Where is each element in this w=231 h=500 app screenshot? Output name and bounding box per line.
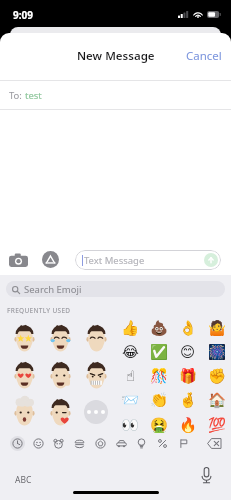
button[interactable]: Sticker: [43, 321, 77, 355]
button[interactable]: Cancel: [177, 42, 231, 70]
button[interactable]: Smileys: [28, 432, 48, 454]
button[interactable]: 💩: [147, 316, 171, 340]
button[interactable]: To:: [0, 81, 231, 109]
staticText: ✅: [150, 344, 169, 361]
button[interactable]: Sticker: [7, 395, 41, 429]
staticText: New Message: [77, 48, 155, 64]
button[interactable]: Objects: [131, 432, 151, 454]
staticText: 🤞: [179, 392, 198, 409]
staticText: 9:09: [13, 8, 33, 22]
button[interactable]: 📨: [118, 388, 142, 412]
button[interactable]: ☝️: [118, 364, 142, 388]
staticText: 🤷: [208, 320, 227, 337]
button[interactable]: 🏠: [205, 388, 229, 412]
button[interactable]: Dictation: [197, 464, 216, 486]
staticText: 👌: [179, 320, 198, 337]
button[interactable]: 💯: [205, 413, 229, 437]
staticText: 🤮: [150, 417, 169, 434]
staticText: 🏠: [208, 392, 227, 409]
staticText: 👀: [121, 417, 140, 434]
button[interactable]: Sticker: [43, 395, 77, 429]
staticText: Cancel: [186, 48, 222, 64]
button[interactable]: ABC: [11, 470, 36, 490]
button[interactable]: Sticker: [43, 358, 77, 392]
button[interactable]: 🎊: [147, 364, 171, 388]
staticText: Search Emoji: [24, 283, 82, 296]
button[interactable]: Delete: [203, 432, 225, 454]
button[interactable]: Text Message: [75, 250, 221, 270]
staticText: 👍: [121, 320, 140, 337]
button[interactable]: Flags: [173, 432, 193, 454]
button[interactable]: ✊: [205, 364, 229, 388]
staticText: Text Message: [84, 254, 145, 267]
button[interactable]: 😂: [118, 340, 142, 364]
button[interactable]: Sticker: [79, 321, 113, 355]
button[interactable]: 🎁: [176, 364, 200, 388]
staticText: 📨: [121, 392, 140, 409]
staticText: 🎆: [208, 344, 227, 361]
staticText: 😊: [180, 344, 196, 361]
button[interactable]: 👍: [118, 316, 142, 340]
button[interactable]: Search Emoji: [6, 281, 225, 297]
button[interactable]: 🤞: [176, 388, 200, 412]
button[interactable]: Animals: [48, 432, 68, 454]
staticText: 😂: [122, 344, 139, 361]
staticText: FREQUENTLY USED: [7, 306, 71, 315]
button[interactable]: 🔥: [176, 413, 200, 437]
staticText: test: [25, 89, 42, 102]
staticText: To:: [9, 89, 25, 102]
button[interactable]: Activities: [90, 432, 110, 454]
button[interactable]: Sticker: [79, 395, 113, 429]
button[interactable]: 😊: [176, 340, 200, 364]
button[interactable]: ✅: [147, 340, 171, 364]
staticText: ☝️: [126, 368, 135, 385]
staticText: ✊: [208, 368, 227, 385]
staticText: 💯: [208, 417, 227, 434]
button[interactable]: Food: [69, 432, 89, 454]
button[interactable]: Send: [204, 253, 218, 267]
staticText: 👏: [150, 392, 169, 409]
button[interactable]: Sticker: [79, 358, 113, 392]
button[interactable]: Sticker: [7, 358, 41, 392]
button[interactable]: Travel: [111, 432, 131, 454]
button[interactable]: Symbols: [152, 432, 172, 454]
staticText: 🔥: [179, 417, 198, 434]
button[interactable]: 👌: [176, 316, 200, 340]
button[interactable]: Sticker: [7, 321, 41, 355]
button[interactable]: Apps: [42, 251, 59, 268]
staticText: 💩: [150, 320, 169, 337]
button[interactable]: 🤷: [205, 316, 229, 340]
staticText: 🎁: [179, 368, 198, 385]
button[interactable]: Recently used: [7, 432, 27, 454]
button[interactable]: 👀: [118, 413, 142, 437]
button[interactable]: 👏: [147, 388, 171, 412]
button[interactable]: Camera: [6, 248, 30, 272]
staticText: 🎊: [150, 368, 169, 385]
button[interactable]: 🤮: [147, 413, 171, 437]
staticText: ABC: [15, 474, 32, 486]
button[interactable]: 🎆: [205, 340, 229, 364]
